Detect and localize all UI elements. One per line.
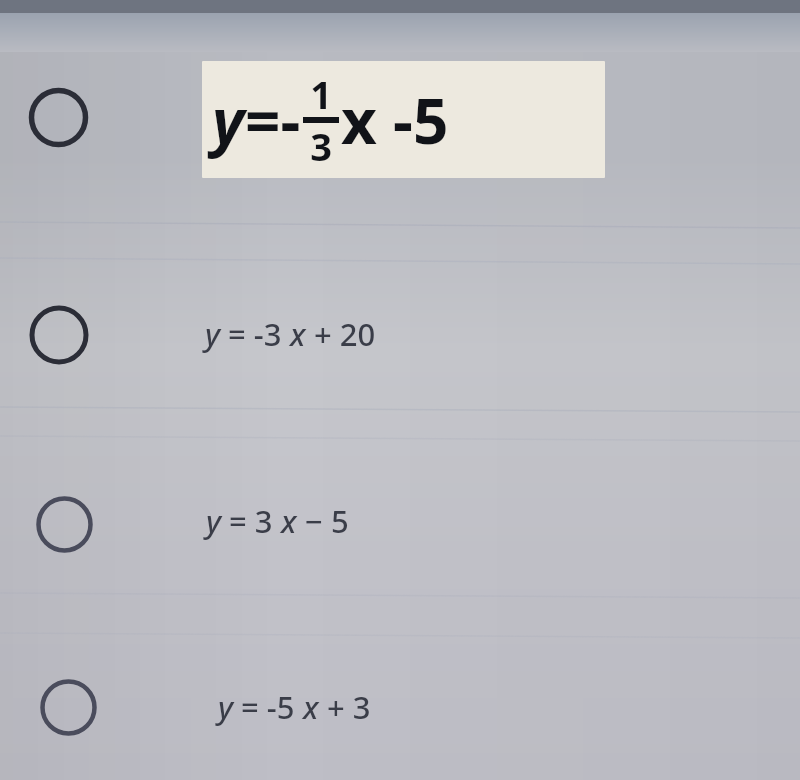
- staticText: y: [212, 78, 245, 162]
- staticText: 3: [310, 120, 332, 172]
- button[interactable]: y: [205, 313, 376, 355]
- staticText: y: [218, 686, 233, 728]
- staticText: x: [303, 686, 319, 728]
- button[interactable]: y: [212, 68, 597, 172]
- button[interactable]: Option 4: [38, 677, 99, 738]
- staticText: = 3: [221, 500, 281, 542]
- staticText: -5: [377, 78, 449, 162]
- staticText: 1: [310, 68, 332, 120]
- staticText: + 3: [319, 686, 371, 728]
- staticText: =-: [245, 78, 301, 162]
- button[interactable]: Option 1: [26, 85, 91, 150]
- staticText: x: [341, 78, 377, 162]
- staticText: x: [290, 313, 306, 355]
- staticText: = -5: [233, 686, 303, 728]
- staticText: x: [281, 500, 297, 542]
- button[interactable]: y: [218, 686, 371, 728]
- staticText: + 20: [306, 313, 376, 355]
- button[interactable]: Option 2: [27, 303, 91, 367]
- button[interactable]: y: [206, 500, 349, 542]
- staticText: y: [206, 500, 221, 542]
- button[interactable]: Option 3: [34, 494, 95, 555]
- staticText: − 5: [297, 500, 349, 542]
- staticText: = -3: [220, 313, 290, 355]
- staticText: y: [205, 313, 220, 355]
